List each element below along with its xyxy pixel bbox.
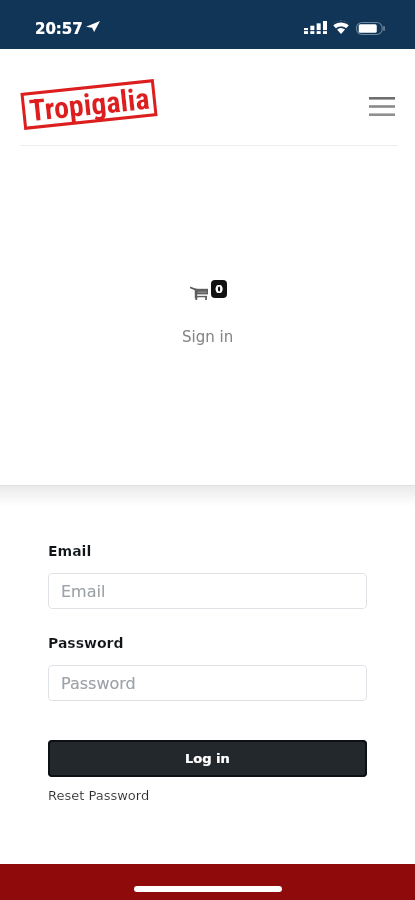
staticText: Password <box>48 635 124 651</box>
button[interactable]: Open menu <box>362 86 402 126</box>
staticText: Email <box>61 582 106 601</box>
button[interactable]: Log in <box>48 740 367 777</box>
staticText: Email <box>48 543 92 559</box>
staticText: 20:57 <box>35 20 83 37</box>
staticText: 0 <box>215 283 223 296</box>
button[interactable]: 0 <box>182 280 234 345</box>
button[interactable]: Reset Password <box>48 788 150 803</box>
button[interactable]: Email <box>48 573 367 609</box>
staticText: Sign in <box>182 328 234 345</box>
staticText: Password <box>61 674 136 693</box>
button[interactable]: Tropigalia home <box>14 74 164 134</box>
staticText: Tropigalia <box>27 81 151 128</box>
staticText: Log in <box>185 751 230 766</box>
staticText: Reset Password <box>48 788 150 803</box>
button[interactable]: Password <box>48 665 367 701</box>
